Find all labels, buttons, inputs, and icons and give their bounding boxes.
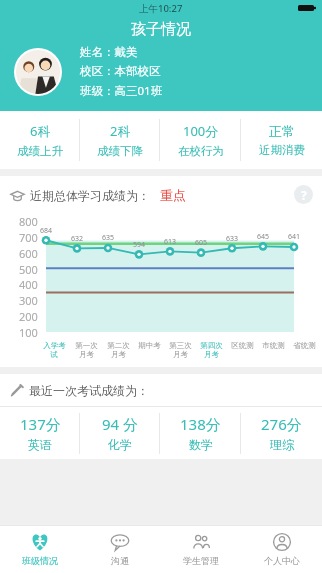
staticText: 数学 xyxy=(189,437,213,452)
staticText: 641 xyxy=(288,232,301,242)
staticText: 班级：高三01班 xyxy=(80,83,163,99)
staticText: 个人中心 xyxy=(264,555,300,566)
staticText: 班级情况 xyxy=(22,555,58,566)
staticText: 正常 xyxy=(269,123,295,139)
staticText: 200 xyxy=(19,309,38,324)
staticText: 第四次 xyxy=(200,341,223,350)
staticText: 化学 xyxy=(108,437,132,452)
staticText: 入学考 xyxy=(43,341,66,350)
staticText: 期中考 xyxy=(138,341,161,350)
button[interactable]: 个人中心 xyxy=(241,525,322,573)
staticText: 理综 xyxy=(270,437,294,452)
staticText: 月考 xyxy=(204,350,219,359)
staticText: 300 xyxy=(19,293,38,308)
button[interactable]: 班级情况 xyxy=(0,525,80,573)
staticText: 276分 xyxy=(261,414,302,434)
staticText: 成绩下降 xyxy=(97,144,143,158)
staticText: 在校行为 xyxy=(178,144,224,158)
button[interactable]: 学生头像 xyxy=(16,50,60,94)
staticText: 省统测 xyxy=(293,341,316,350)
staticText: 月考 xyxy=(79,350,94,359)
staticText: 姓名：戴美 xyxy=(80,45,138,59)
staticText: 校区：本部校区 xyxy=(80,64,161,78)
staticText: 第三次 xyxy=(169,341,192,350)
staticText: 100分 xyxy=(183,122,219,140)
staticText: 上午10:27 xyxy=(139,2,183,15)
staticText: 月考 xyxy=(173,350,188,359)
staticText: ? xyxy=(301,187,307,203)
staticText: 英语 xyxy=(28,437,52,452)
button[interactable]: 94 分 xyxy=(80,407,160,459)
staticText: 600 xyxy=(19,246,38,261)
staticText: 第一次 xyxy=(75,341,98,350)
staticText: 重点 xyxy=(160,187,186,203)
button[interactable]: 正常 xyxy=(241,111,322,169)
staticText: 700 xyxy=(19,230,38,245)
staticText: 试 xyxy=(50,350,58,359)
staticText: 6科 xyxy=(30,122,51,140)
staticText: 137分 xyxy=(20,414,61,434)
staticText: 500 xyxy=(19,262,38,277)
staticText: 近期消费 xyxy=(259,143,305,157)
staticText: 市统测 xyxy=(262,341,285,350)
staticText: 800 xyxy=(19,214,38,229)
staticText: 近期总体学习成绩为： xyxy=(30,188,150,203)
staticText: 成绩上升 xyxy=(17,144,63,158)
button[interactable]: 帮助 xyxy=(294,185,313,204)
staticText: 400 xyxy=(19,277,38,292)
staticText: 138分 xyxy=(180,414,221,434)
button[interactable]: 276分 xyxy=(241,407,322,459)
staticText: 学生管理 xyxy=(183,555,219,566)
staticText: 645 xyxy=(257,232,270,242)
button[interactable]: 138分 xyxy=(160,407,241,459)
button[interactable]: 学生管理 xyxy=(160,525,241,573)
button[interactable]: 137分 xyxy=(0,407,80,459)
button[interactable]: 沟通 xyxy=(80,525,160,573)
staticText: 684 xyxy=(40,226,53,236)
button[interactable]: 2科 xyxy=(80,111,160,169)
button[interactable]: 6科 xyxy=(0,111,80,169)
button[interactable]: 100分 xyxy=(160,111,241,169)
staticText: 月考 xyxy=(111,350,126,359)
staticText: 594 xyxy=(133,240,146,250)
staticText: 605 xyxy=(195,238,208,248)
staticText: 633 xyxy=(226,234,239,244)
staticText: 最近一次考试成绩为： xyxy=(29,383,149,398)
staticText: 2科 xyxy=(110,122,131,140)
staticText: 孩子情况 xyxy=(131,20,191,39)
staticText: 第二次 xyxy=(107,341,130,350)
staticText: 635 xyxy=(102,233,115,243)
staticText: 100 xyxy=(19,325,38,340)
staticText: 区统测 xyxy=(231,341,254,350)
staticText: 沟通 xyxy=(111,555,129,566)
staticText: 613 xyxy=(164,237,177,247)
staticText: 94 分 xyxy=(102,414,139,434)
staticText: 632 xyxy=(71,234,84,244)
